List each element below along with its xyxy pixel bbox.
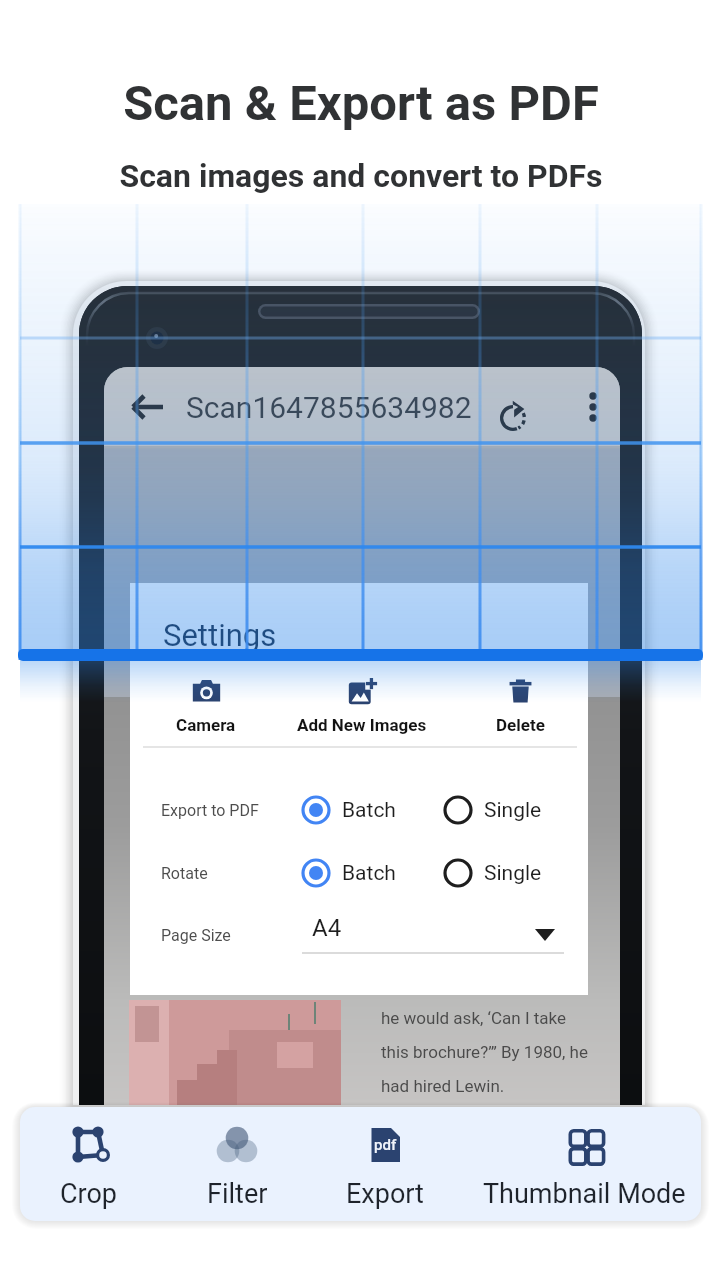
button[interactable]: A4 bbox=[302, 911, 564, 965]
staticText: had hired Lewin. bbox=[381, 1076, 505, 1096]
staticText: Scan1647855634982 bbox=[186, 390, 472, 425]
staticText: Thumbnail Mode bbox=[483, 1178, 686, 1210]
button[interactable]: Export bbox=[265, 1107, 505, 1221]
staticText: Scan images and convert to PDFs bbox=[119, 157, 603, 195]
staticText: Export to PDF bbox=[161, 801, 259, 820]
button[interactable]: Crop bbox=[20, 1107, 209, 1221]
button[interactable]: Single bbox=[438, 853, 544, 897]
staticText: Batch bbox=[342, 798, 396, 823]
button[interactable]: Rotate bbox=[485, 388, 541, 444]
staticText: Rotate bbox=[161, 864, 208, 883]
staticText: Filter bbox=[207, 1178, 268, 1210]
staticText: this brochure?’” By 1980, he bbox=[381, 1042, 588, 1062]
staticText: Scan & Export as PDF bbox=[123, 75, 599, 132]
button[interactable]: Thumbnail Mode bbox=[464, 1107, 701, 1221]
staticText: Add New Images bbox=[297, 715, 427, 734]
staticText: Single bbox=[484, 798, 542, 823]
button[interactable]: Back bbox=[120, 379, 176, 435]
staticText: Camera bbox=[176, 715, 236, 734]
staticText: pdf bbox=[374, 1136, 397, 1154]
staticText: he would ask, ‘Can I take bbox=[381, 1008, 567, 1028]
staticText: Batch bbox=[342, 861, 396, 886]
button[interactable]: Camera bbox=[106, 676, 306, 734]
button[interactable]: Filter bbox=[117, 1107, 357, 1221]
staticText: Crop bbox=[60, 1178, 118, 1210]
button[interactable]: More options bbox=[572, 386, 614, 428]
button[interactable]: Delete bbox=[420, 676, 620, 734]
staticText: Delete bbox=[496, 715, 545, 734]
button[interactable]: Single bbox=[438, 790, 544, 834]
staticText: Single bbox=[484, 861, 542, 886]
staticText: Settings bbox=[163, 617, 277, 653]
button[interactable]: Batch bbox=[296, 853, 402, 897]
button[interactable]: Add New Images bbox=[262, 676, 462, 734]
staticText: A4 bbox=[312, 914, 342, 942]
staticText: Export bbox=[346, 1178, 424, 1210]
button[interactable]: Batch bbox=[296, 790, 402, 834]
staticText: Page Size bbox=[161, 926, 231, 945]
